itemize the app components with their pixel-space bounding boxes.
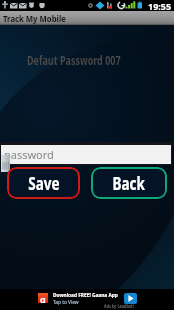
button[interactable]: Save bbox=[7, 167, 80, 199]
button[interactable]: g bbox=[0, 289, 174, 310]
staticText: 19:55 bbox=[148, 0, 172, 11]
staticText: Track My Mobile bbox=[3, 12, 67, 24]
staticText: Back bbox=[112, 171, 145, 196]
staticText: Defaut Password 007 bbox=[27, 52, 121, 68]
button[interactable]: password bbox=[1, 145, 171, 164]
button[interactable]: Play bbox=[124, 293, 137, 304]
button[interactable]: Back bbox=[91, 167, 167, 199]
staticText: password bbox=[4, 147, 54, 162]
staticText: g bbox=[40, 293, 46, 303]
staticText: Tap to View bbox=[53, 299, 79, 306]
staticText: Save bbox=[28, 171, 60, 196]
staticText: Download FREE! Gaana App bbox=[53, 292, 119, 299]
staticText: Ads by Leadbolt bbox=[104, 303, 134, 309]
